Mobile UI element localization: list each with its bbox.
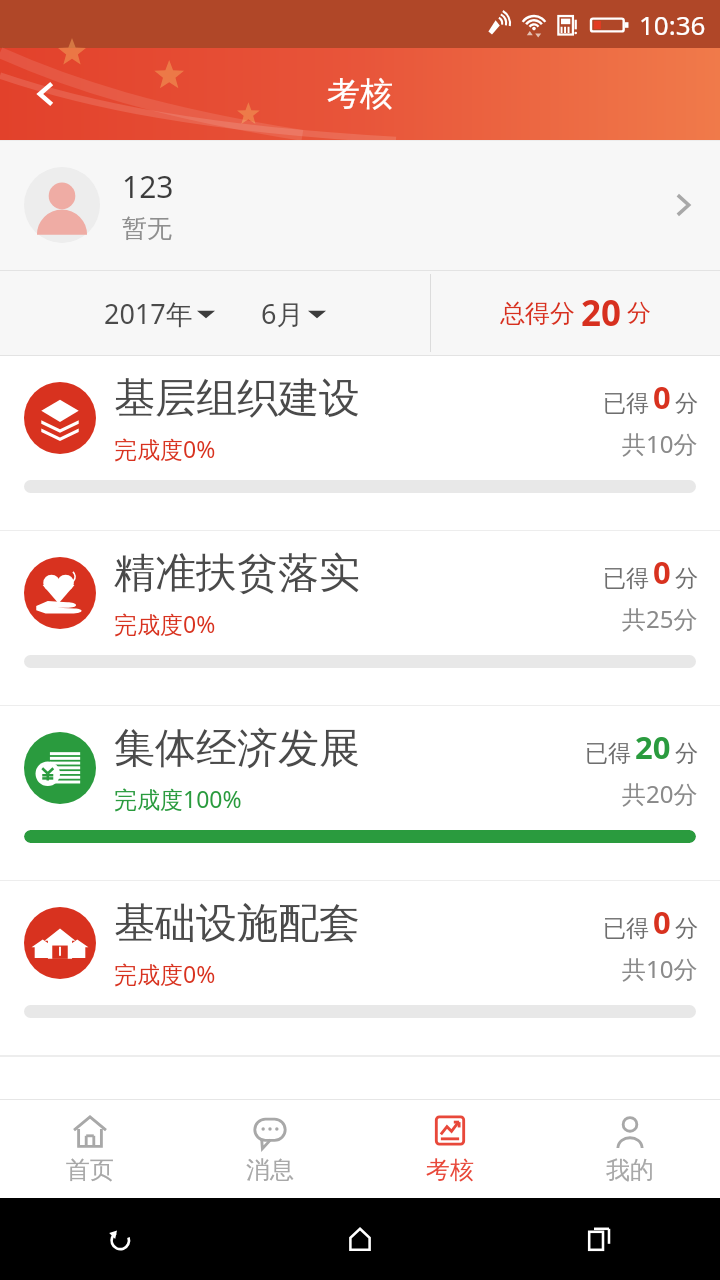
staticText: 已得 [585, 739, 631, 768]
button[interactable]: 我的 [540, 1100, 720, 1198]
staticText: 集体经济发展 [114, 723, 360, 775]
button[interactable]: Home [336, 1215, 384, 1263]
staticText: 20 [635, 726, 671, 768]
staticText: 考核 [327, 73, 393, 115]
button[interactable]: 2017年 [0, 270, 430, 356]
staticText: 共10分 [622, 952, 698, 985]
staticText: 0 [653, 551, 671, 593]
staticText: 20 [581, 289, 622, 337]
staticText: 完成度100% [114, 783, 242, 814]
staticText: 基层组织建设 [114, 373, 360, 425]
button[interactable]: 基础设施配套 [0, 881, 720, 1056]
staticText: 首页 [66, 1155, 114, 1185]
staticText: 考核 [426, 1155, 474, 1185]
staticText: 完成度0% [114, 608, 216, 639]
staticText: 消息 [246, 1155, 294, 1185]
staticText: 0 [653, 376, 671, 418]
button[interactable]: 基层组织建设 [0, 356, 720, 531]
button[interactable]: Back [96, 1215, 144, 1263]
staticText: 分 [675, 914, 698, 943]
staticText: 已得 [603, 389, 649, 418]
button[interactable]: 集体经济发展 [0, 706, 720, 881]
button[interactable]: 123 [0, 140, 720, 270]
staticText: 总得分 [500, 298, 575, 329]
staticText: 完成度0% [114, 958, 216, 989]
staticText: 10:36 [639, 7, 706, 42]
staticText: 共10分 [622, 427, 698, 460]
button[interactable]: 首页 [0, 1100, 180, 1198]
staticText: 2017年 [104, 295, 193, 332]
staticText: 6月 [261, 295, 304, 332]
staticText: 暂无 [122, 213, 172, 244]
staticText: 精准扶贫落实 [114, 548, 360, 600]
staticText: 分 [675, 564, 698, 593]
button[interactable]: Recent apps [576, 1215, 624, 1263]
button[interactable]: 考核 [360, 1100, 540, 1198]
button[interactable]: 消息 [180, 1100, 360, 1198]
staticText: 共25分 [622, 602, 698, 635]
staticText: 共20分 [622, 777, 698, 810]
staticText: 0 [653, 901, 671, 943]
staticText: 已得 [603, 564, 649, 593]
staticText: 分 [627, 298, 651, 328]
staticText: 基础设施配套 [114, 898, 360, 950]
button[interactable]: Back [18, 66, 74, 122]
staticText: 已得 [603, 914, 649, 943]
button[interactable]: 精准扶贫落实 [0, 531, 720, 706]
staticText: 分 [675, 739, 698, 768]
staticText: 完成度0% [114, 433, 216, 464]
staticText: 我的 [606, 1155, 654, 1185]
staticText: 123 [122, 166, 174, 207]
staticText: 分 [675, 389, 698, 418]
